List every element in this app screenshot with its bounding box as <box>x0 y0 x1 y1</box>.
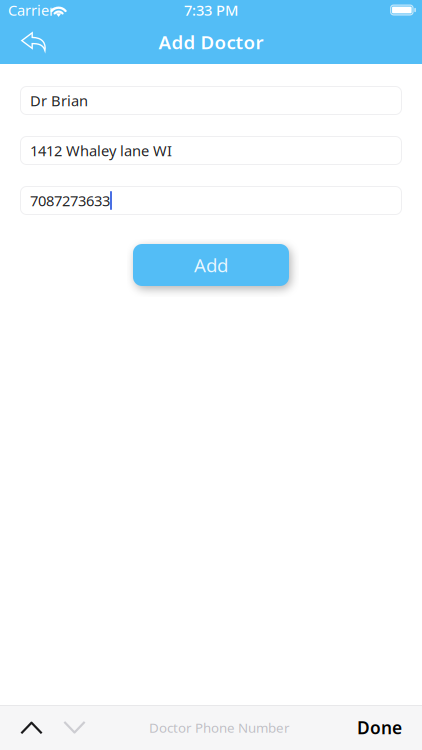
staticText: 1412 Whaley lane WI <box>30 141 172 160</box>
staticText: 7:33 PM <box>184 0 238 20</box>
button[interactable]: Next field <box>53 710 96 744</box>
staticText: Add Doctor <box>158 30 263 54</box>
button[interactable]: Back <box>0 20 58 64</box>
button[interactable]: Done <box>343 706 416 749</box>
staticText: Carrier <box>8 0 55 20</box>
staticText: Add <box>194 253 228 277</box>
button[interactable]: Previous field <box>6 710 53 744</box>
button[interactable]: Add <box>133 244 289 286</box>
staticText: Dr Brian <box>30 91 88 110</box>
staticText: Doctor Phone Number <box>149 719 290 736</box>
staticText: Done <box>357 716 402 739</box>
staticText: 7087273633 <box>30 191 110 210</box>
